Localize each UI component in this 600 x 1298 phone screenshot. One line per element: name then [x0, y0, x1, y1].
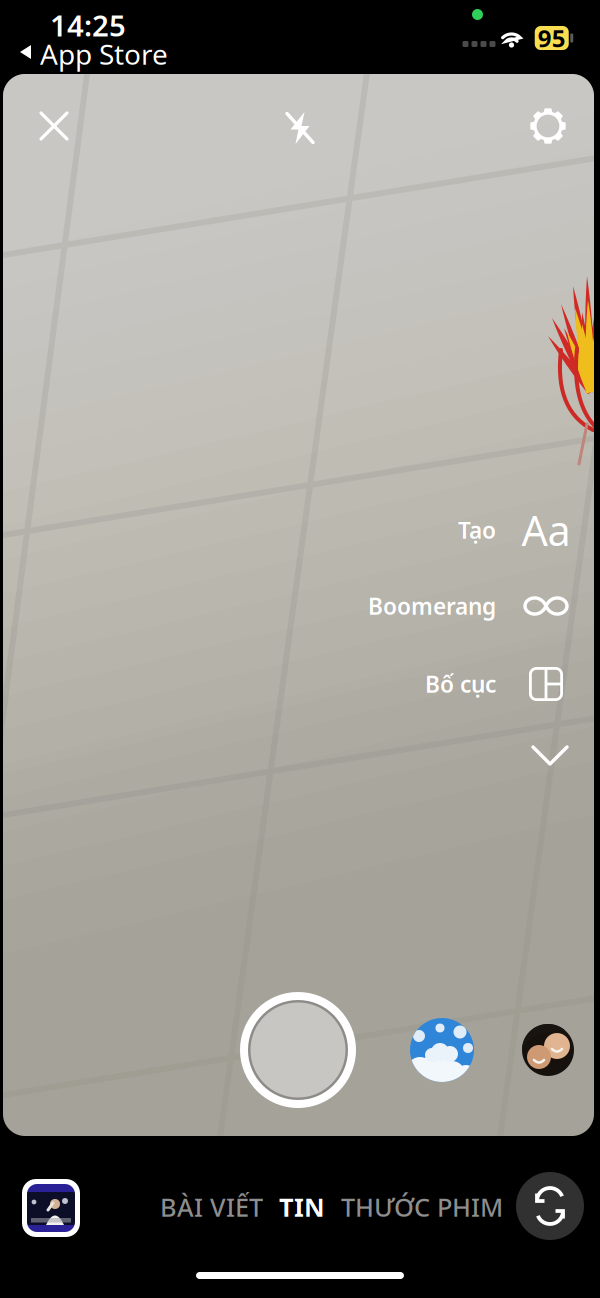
button[interactable]: Effect: faces: [522, 1024, 574, 1076]
button[interactable]: Switch camera: [516, 1172, 584, 1240]
button[interactable]: More modes: [522, 734, 578, 778]
staticText: THƯỚC PHIM: [341, 1190, 503, 1224]
button[interactable]: Boomerang: [300, 580, 570, 632]
staticText: Tạo: [458, 515, 496, 545]
staticText: App Store: [40, 35, 168, 73]
staticText: 14:25: [50, 5, 126, 44]
staticText: Boomerang: [368, 591, 496, 621]
button[interactable]: Tạo: [300, 504, 570, 556]
staticText: Aa: [521, 503, 570, 557]
button[interactable]: Camera settings: [526, 104, 570, 148]
button[interactable]: BÀI VIẾT: [160, 1180, 263, 1234]
staticText: TIN: [279, 1190, 325, 1224]
button[interactable]: THƯỚC PHIM: [341, 1180, 503, 1234]
button[interactable]: Flash off: [278, 106, 322, 150]
button[interactable]: Bố cục: [300, 658, 570, 710]
button[interactable]: Effect: sky: [410, 1018, 474, 1082]
button[interactable]: Camera roll: [22, 1179, 80, 1237]
button[interactable]: Take photo: [240, 992, 356, 1108]
staticText: 95: [538, 22, 566, 54]
button[interactable]: Close: [32, 104, 76, 148]
staticText: BÀI VIẾT: [160, 1190, 263, 1224]
button[interactable]: TIN: [279, 1180, 325, 1234]
staticText: Bố cục: [425, 669, 496, 699]
